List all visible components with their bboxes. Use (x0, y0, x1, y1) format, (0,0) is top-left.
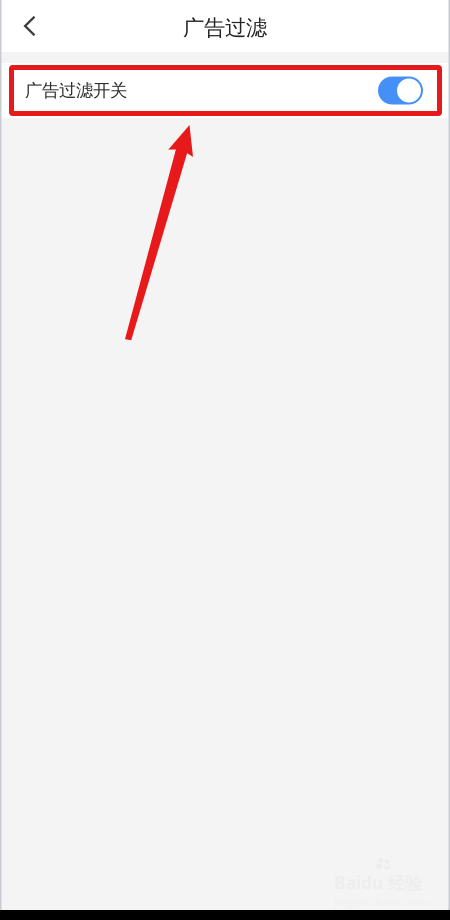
staticText: 广告过滤 (183, 15, 267, 41)
staticText: 广告过滤开关 (25, 80, 127, 101)
button[interactable]: Back (4, 0, 56, 52)
button[interactable]: 广告过滤开关 (0, 63, 450, 118)
button[interactable]: 广告过滤开关 (378, 76, 423, 104)
